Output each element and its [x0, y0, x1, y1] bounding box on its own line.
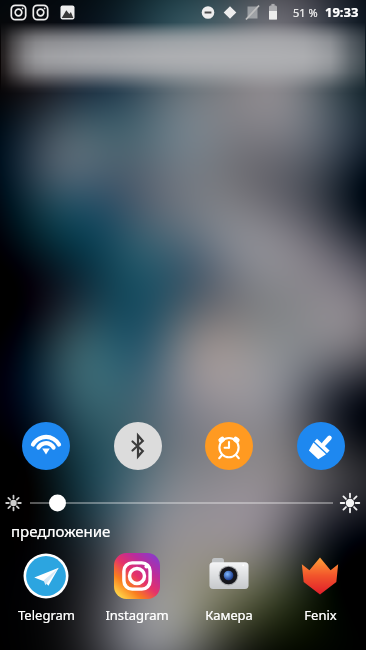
- staticText: Instagram: [105, 606, 169, 624]
- button[interactable]: Fenix: [280, 553, 360, 624]
- button[interactable]: [0, 488, 366, 518]
- staticText: 19:33: [325, 3, 359, 21]
- button[interactable]: Wi-Fi: [22, 422, 70, 470]
- button[interactable]: Cleaner: [297, 422, 345, 470]
- button[interactable]: Alarm: [205, 422, 253, 470]
- button[interactable]: Telegram: [6, 553, 86, 624]
- staticText: Telegram: [18, 606, 75, 624]
- staticText: Камера: [205, 606, 253, 624]
- button[interactable]: Instagram: [97, 553, 177, 624]
- staticText: 51 %: [293, 5, 318, 20]
- button[interactable]: Bluetooth: [114, 422, 162, 470]
- button[interactable]: Камера: [189, 553, 269, 624]
- staticText: предложение: [11, 521, 111, 541]
- staticText: Fenix: [304, 606, 337, 624]
